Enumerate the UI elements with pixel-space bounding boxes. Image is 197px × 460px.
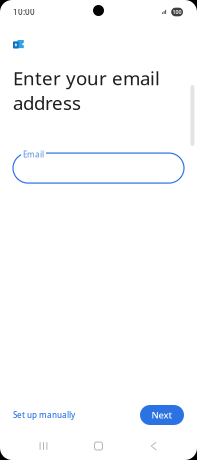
staticText: 100 — [173, 8, 182, 16]
button[interactable]: Set up manually — [12, 405, 76, 425]
button[interactable]: Next — [140, 405, 184, 425]
button[interactable]: Recent apps — [16, 433, 71, 459]
staticText: Enter your email address — [13, 65, 160, 115]
staticText: Next — [151, 409, 172, 421]
staticText: Set up manually — [13, 410, 75, 420]
staticText: 10:00 — [13, 7, 35, 17]
button[interactable]: Home — [71, 433, 126, 459]
staticText: Email — [23, 149, 44, 160]
button[interactable]: Back — [126, 433, 181, 459]
